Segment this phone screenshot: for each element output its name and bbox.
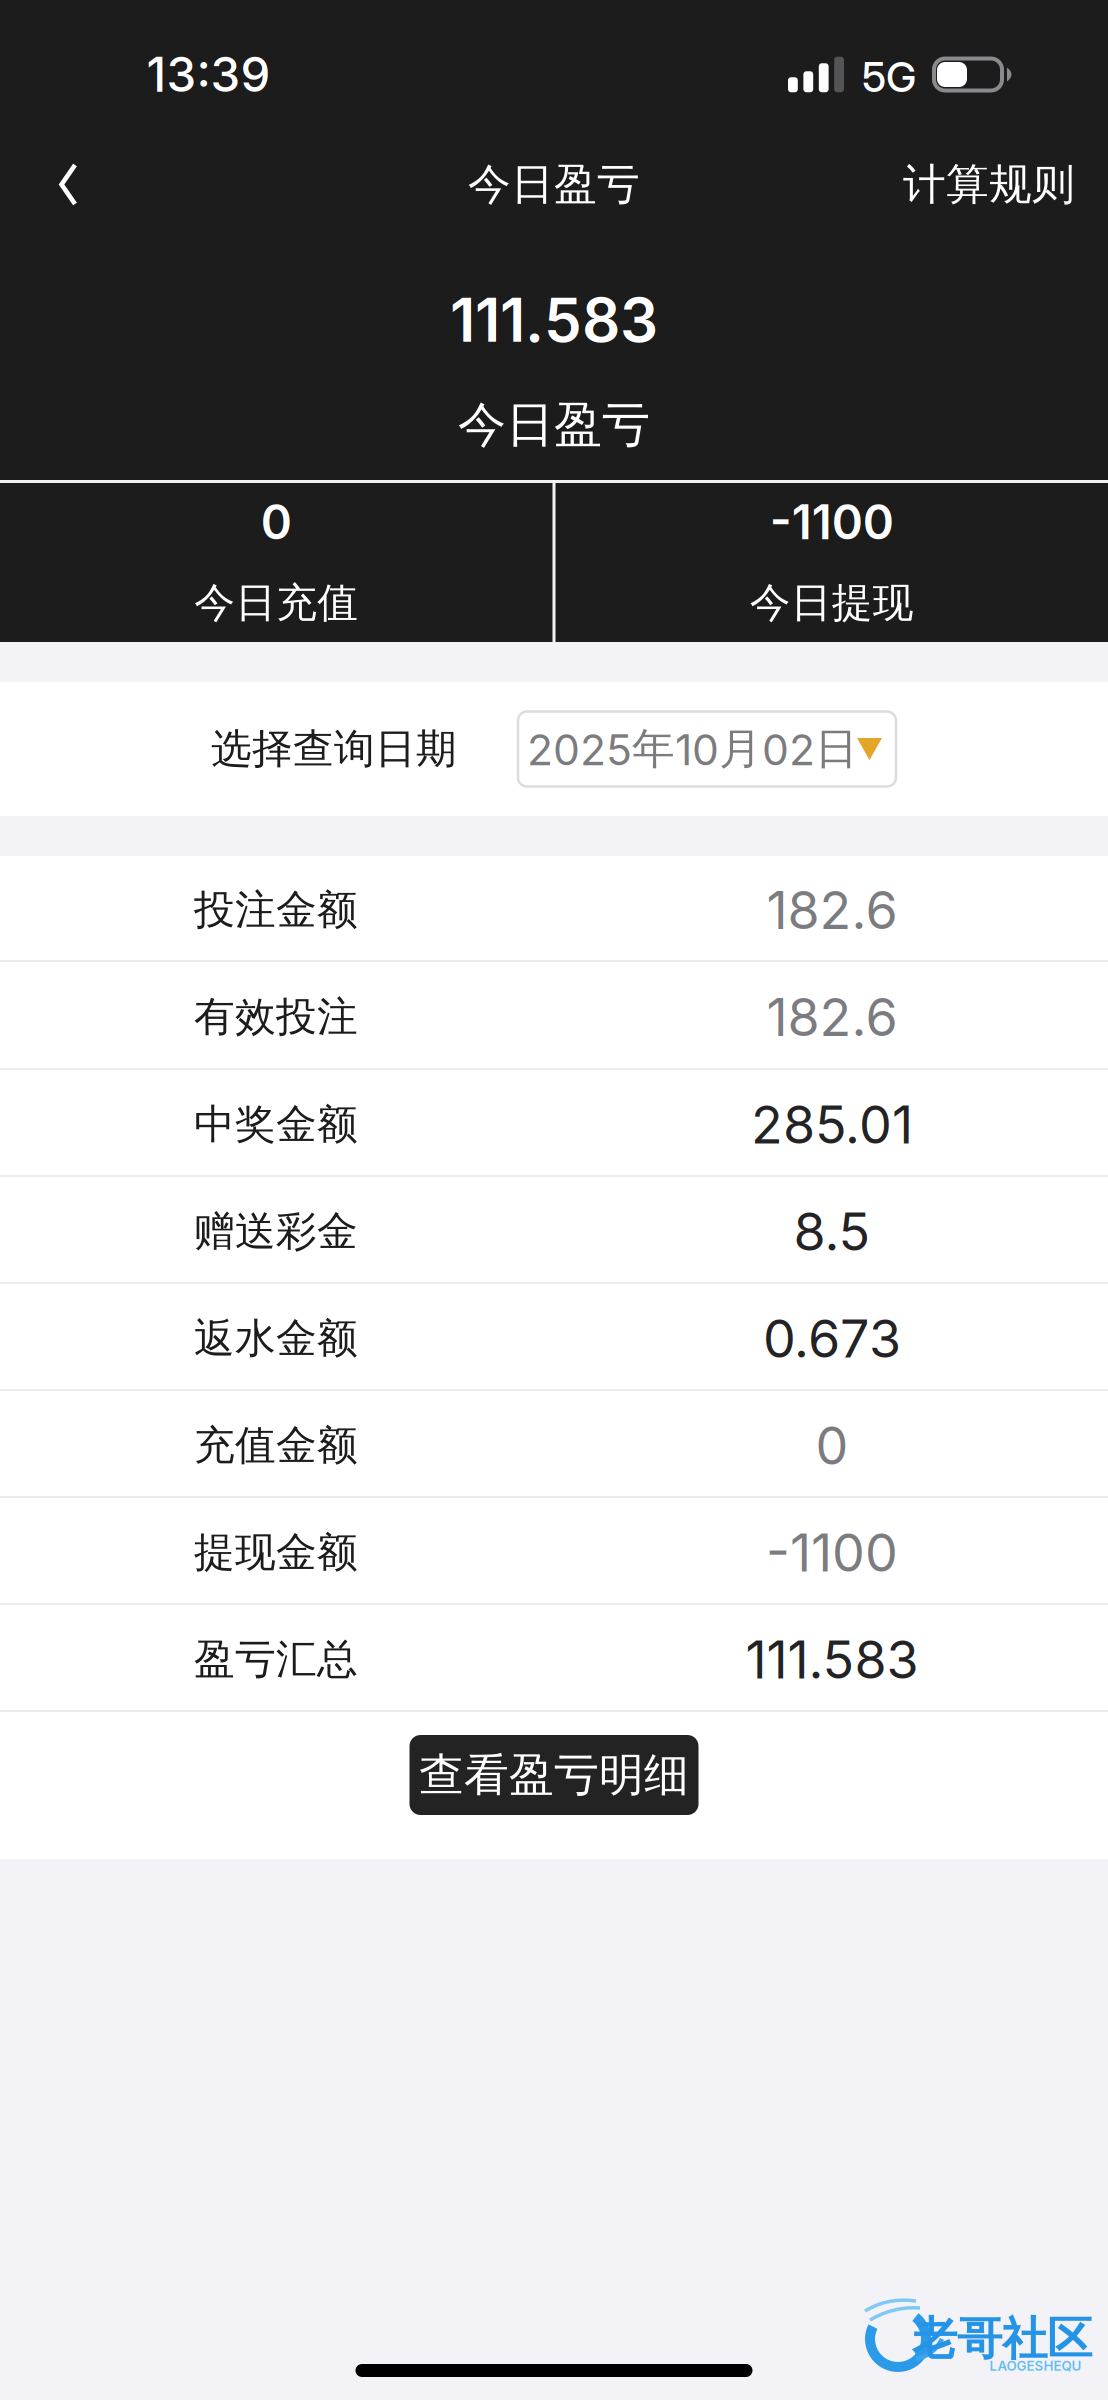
staticText: 0.673 — [763, 1307, 901, 1370]
staticText: 今日盈亏 — [468, 158, 640, 211]
staticText: 中奖金额 — [194, 1099, 358, 1150]
staticText: -1100 — [766, 1521, 898, 1584]
staticText: 今日盈亏 — [458, 395, 650, 455]
staticText: 13:39 — [146, 46, 270, 103]
staticText: 2025年10月02日 — [527, 722, 858, 776]
staticText: 查看盈亏明细 — [419, 1747, 689, 1803]
staticText: 285.01 — [751, 1093, 913, 1156]
staticText: 盈亏汇总 — [194, 1634, 358, 1685]
button[interactable]: 计算规则 — [903, 118, 1108, 251]
staticText: 182.6 — [766, 985, 897, 1048]
staticText: 提现金额 — [194, 1527, 358, 1578]
staticText: 5G — [862, 52, 916, 102]
staticText: -1100 — [770, 493, 894, 551]
staticText: 0 — [261, 493, 292, 551]
staticText: 有效投注 — [194, 991, 358, 1043]
staticText: 0 — [815, 1414, 848, 1477]
staticText: LAOGESHEQU — [989, 2358, 1081, 2374]
staticText: 赠送彩金 — [194, 1206, 358, 1257]
staticText: 今日充值 — [194, 577, 358, 629]
staticText: 8.5 — [793, 1200, 870, 1263]
button[interactable]: 查看盈亏明细 — [409, 1735, 698, 1815]
staticText: 111.583 — [745, 1628, 918, 1691]
staticText: 今日提现 — [750, 577, 914, 629]
staticText: 投注金额 — [194, 884, 358, 936]
button[interactable]: 2025年10月02日 — [518, 711, 896, 786]
staticText: 182.6 — [766, 878, 897, 941]
button[interactable]: Back — [0, 118, 140, 251]
staticText: 111.583 — [450, 284, 658, 356]
staticText: 老哥社区 — [912, 2310, 1092, 2367]
staticText: 返水金额 — [194, 1313, 358, 1364]
staticText: 选择查询日期 — [211, 723, 457, 775]
staticText: 充值金额 — [194, 1420, 358, 1471]
staticText: 计算规则 — [903, 158, 1075, 211]
